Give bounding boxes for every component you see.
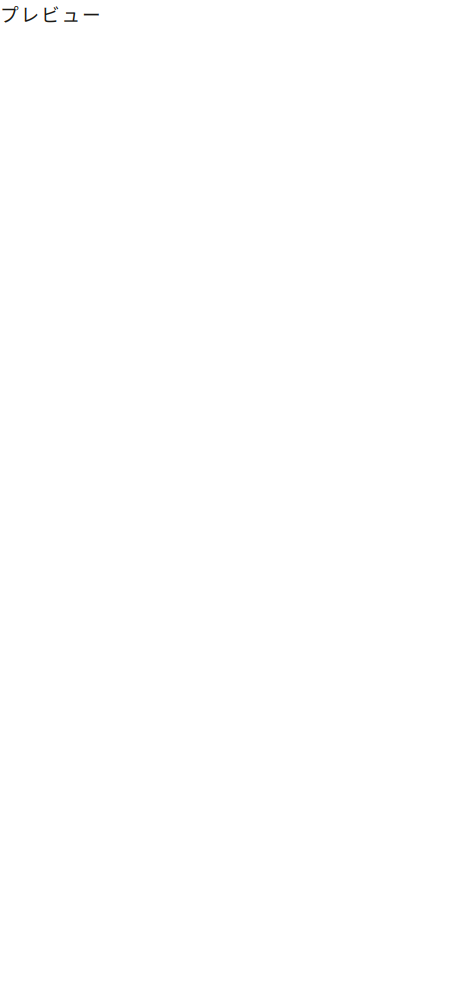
staticText: プレビュー bbox=[0, 0, 101, 27]
